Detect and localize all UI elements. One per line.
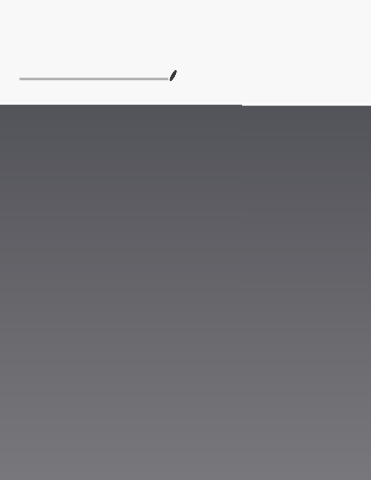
button[interactable]: Edit bbox=[12, 62, 188, 96]
button[interactable]: Preview bbox=[0, 102, 371, 480]
